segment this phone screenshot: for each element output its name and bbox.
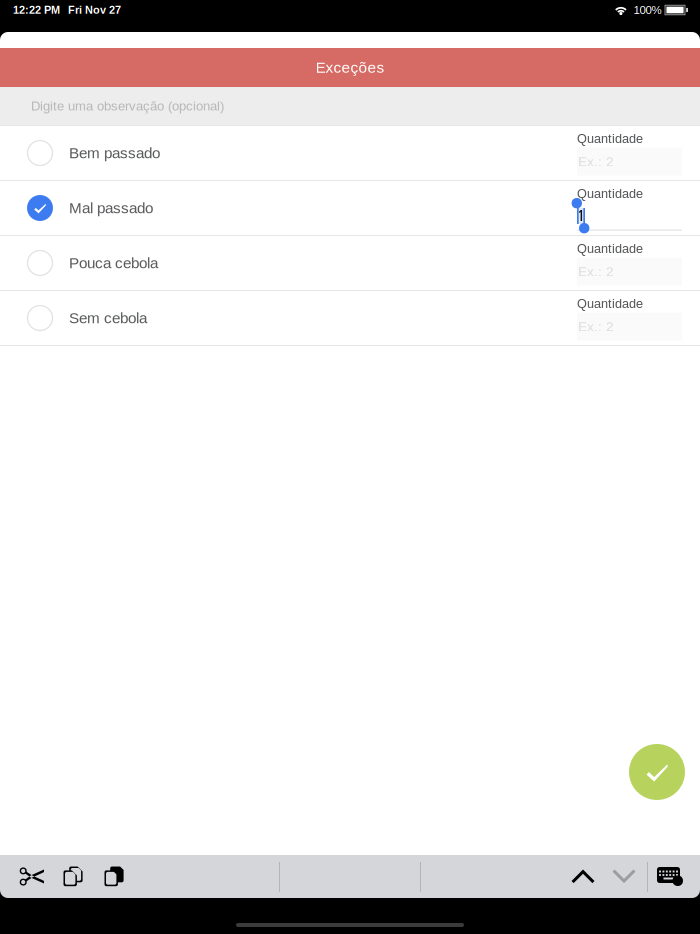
button[interactable]: Campo anterior — [561, 855, 605, 898]
staticText: 100% — [633, 4, 661, 16]
button[interactable]: Pouca cebola — [0, 236, 700, 290]
staticText: Exceções — [315, 59, 384, 76]
staticText: Pouca cebola — [69, 254, 158, 271]
staticText: Quantidade — [577, 186, 643, 201]
staticText: Fri Nov 27 — [68, 4, 121, 16]
staticText: Mal passado — [69, 199, 153, 216]
staticText: 12:22 PM — [13, 4, 60, 16]
button[interactable]: Mal passado — [0, 181, 700, 235]
staticText: Digite uma observação (opcional) — [31, 99, 224, 113]
staticText: Bem passado — [69, 144, 160, 161]
button[interactable]: Sem cebola — [0, 291, 700, 345]
staticText: Quantidade — [577, 131, 643, 146]
staticText: Quantidade — [577, 241, 643, 256]
staticText: Quantidade — [577, 296, 643, 311]
button[interactable]: Ocultar teclado — [653, 855, 687, 898]
button[interactable]: Confirmar — [629, 744, 685, 800]
button[interactable]: Recortar — [10, 855, 54, 898]
button[interactable]: Colar — [92, 855, 136, 898]
button[interactable]: Próximo campo — [602, 855, 646, 898]
button[interactable]: Bem passado — [0, 126, 700, 180]
button[interactable]: Copiar — [51, 855, 95, 898]
staticText: Ex.: 2 — [578, 264, 614, 279]
staticText: Sem cebola — [69, 309, 147, 326]
staticText: Ex.: 2 — [578, 319, 614, 334]
staticText: Ex.: 2 — [578, 154, 614, 169]
